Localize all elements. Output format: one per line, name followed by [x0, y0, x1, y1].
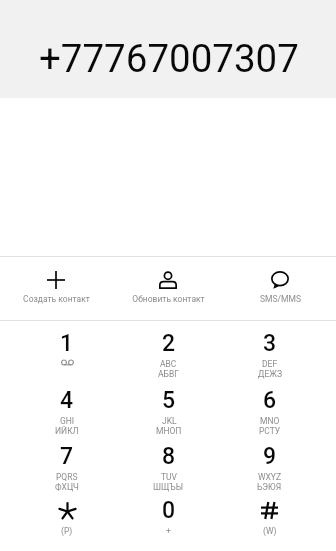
staticText: MNO — [260, 416, 280, 426]
staticText: 9 — [263, 443, 277, 470]
staticText: РСТУ — [259, 426, 281, 436]
button[interactable]: 0 — [118, 488, 219, 542]
staticText: ДЕЖЗ — [258, 369, 282, 379]
other: Send message — [271, 271, 289, 289]
staticText: ФХЦЧ — [55, 482, 79, 492]
staticText: GHI — [60, 416, 75, 426]
staticText: Обновить контакт — [132, 294, 205, 304]
staticText: + — [166, 526, 171, 536]
button[interactable]: 6 — [219, 378, 320, 434]
button[interactable]: Update contact — [112, 257, 224, 320]
staticText: 8 — [162, 443, 176, 470]
button[interactable]: 2 — [118, 321, 219, 378]
staticText: 4 — [60, 387, 74, 414]
button[interactable]: star — [16, 488, 118, 542]
staticText: PQRS — [56, 472, 78, 482]
button[interactable]: 8 — [118, 434, 219, 488]
staticText: JKL — [162, 416, 177, 426]
staticText: TUV — [161, 472, 177, 482]
staticText: 1 — [60, 330, 74, 357]
staticText: ABC — [160, 359, 177, 369]
staticText: DEF — [262, 359, 278, 369]
staticText: МНОП — [156, 426, 182, 436]
staticText: (P) — [61, 526, 73, 536]
other: Update contact — [159, 271, 177, 289]
button[interactable]: 9 — [219, 434, 320, 488]
staticText: ИЙКЛ — [55, 426, 79, 436]
staticText: SMS/MMS — [260, 294, 301, 304]
staticText: ШЩЪЫ — [153, 482, 184, 492]
button[interactable]: 5 — [118, 378, 219, 434]
button[interactable]: 4 — [16, 378, 118, 434]
staticText: +77767007307 — [39, 36, 299, 81]
staticText: 5 — [162, 387, 176, 414]
staticText: АБВГ — [158, 369, 179, 379]
button[interactable]: 3 — [219, 321, 320, 378]
staticText: 3 — [263, 330, 277, 357]
button[interactable]: pound — [219, 488, 320, 542]
button[interactable]: Create contact — [0, 257, 112, 320]
button[interactable]: 7 — [16, 434, 118, 488]
staticText: 7 — [60, 443, 74, 470]
staticText: (W) — [263, 526, 277, 536]
staticText: Создать контакт — [23, 294, 90, 304]
staticText: WXYZ — [258, 472, 282, 482]
button[interactable]: Send message — [224, 257, 336, 320]
other: Create contact — [47, 271, 65, 289]
staticText: 6 — [263, 387, 277, 414]
button[interactable]: 1 — [16, 321, 118, 378]
staticText: ЬЭЮЯ — [257, 482, 282, 492]
staticText: 2 — [162, 330, 176, 357]
staticText: 0 — [162, 497, 176, 524]
